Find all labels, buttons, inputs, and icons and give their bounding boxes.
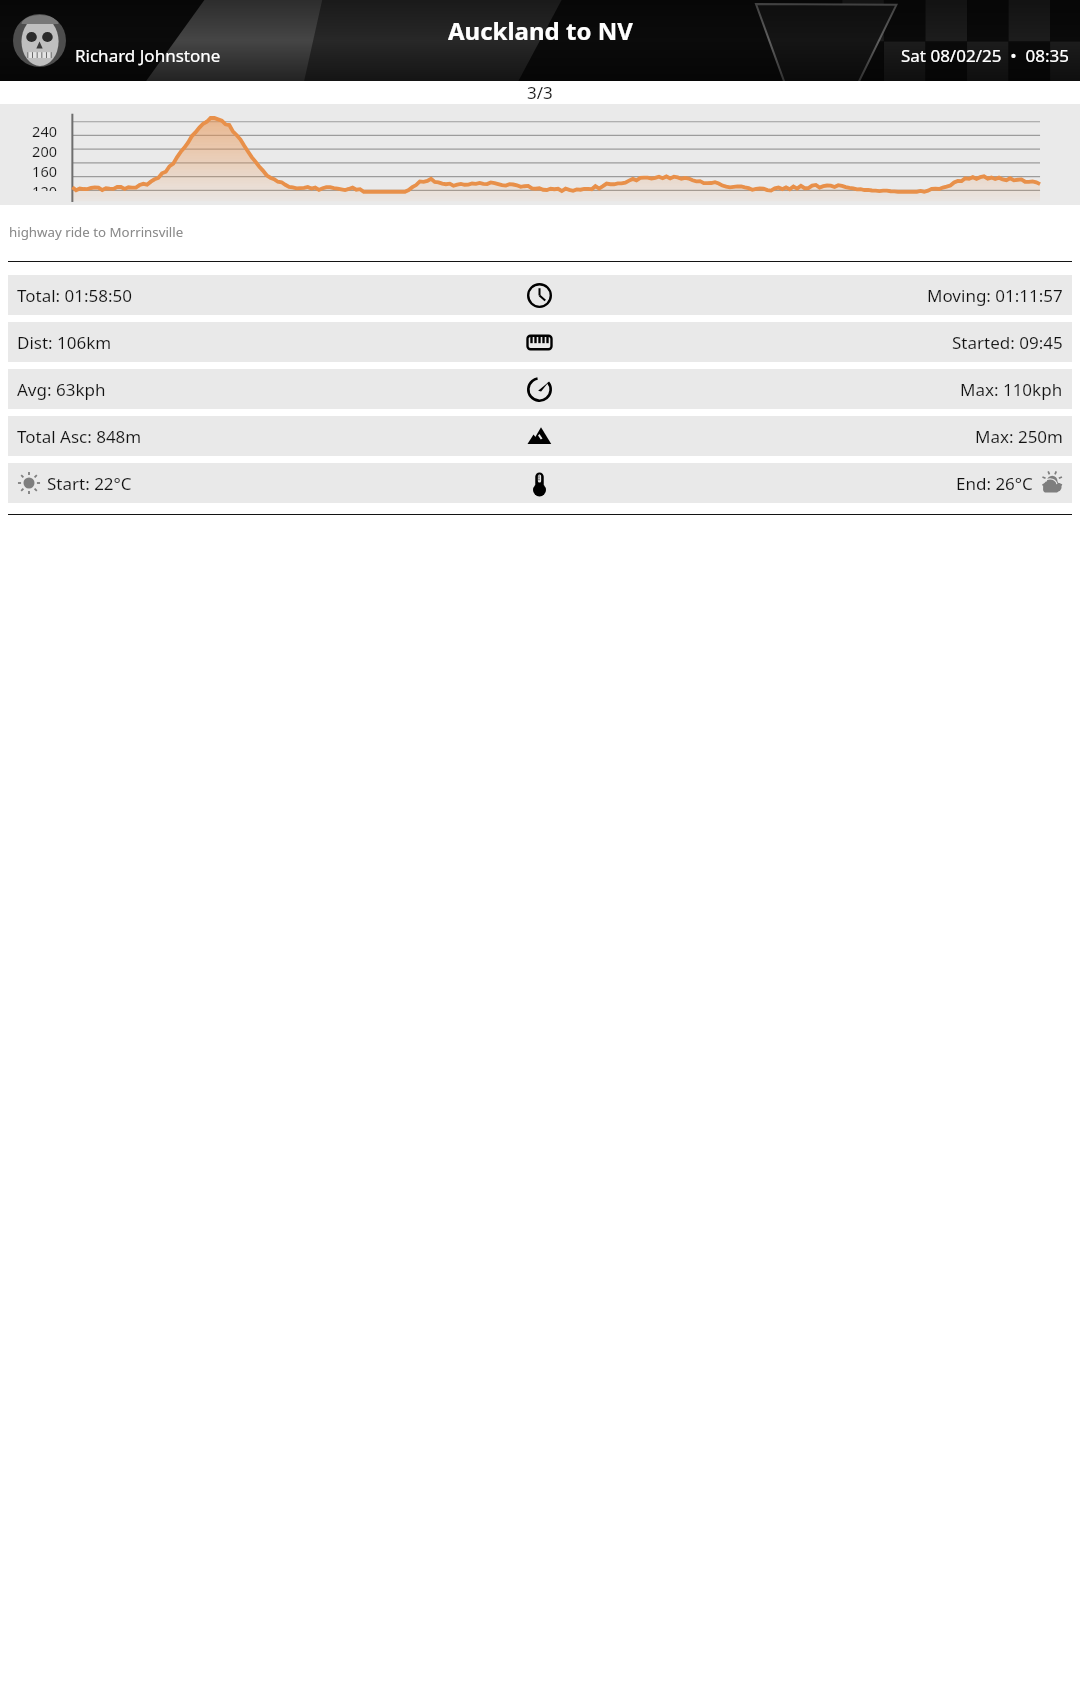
other: Partly cloudy xyxy=(1039,471,1063,495)
staticText: Max: 110kph xyxy=(960,378,1063,401)
staticText: End: 26°C xyxy=(956,472,1033,495)
staticText: Auckland to NV xyxy=(448,14,633,47)
staticText: 3/3 xyxy=(527,81,553,104)
other: Speed xyxy=(527,377,552,402)
other: Duration xyxy=(527,283,552,308)
staticText: Started: 09:45 xyxy=(952,331,1063,354)
other: Elevation xyxy=(527,424,552,449)
other: Temperature xyxy=(527,471,552,496)
staticText: Dist: 106km xyxy=(17,331,112,354)
staticText: Richard Johnstone xyxy=(75,44,221,67)
button[interactable]: Avg: 63kph xyxy=(8,369,1072,409)
staticText: Avg: 63kph xyxy=(17,378,106,401)
button[interactable]: Dist: 106km xyxy=(8,322,1072,362)
staticText: Moving: 01:11:57 xyxy=(927,284,1063,307)
button[interactable]: Total: 01:58:50 xyxy=(8,275,1072,315)
other: Distance xyxy=(527,330,552,355)
staticText: 240 xyxy=(32,121,57,141)
button[interactable]: Rider avatar xyxy=(13,14,66,67)
staticText: Total: 01:58:50 xyxy=(17,284,133,307)
button[interactable]: Sunny xyxy=(8,463,1072,503)
staticText: Start: 22°C xyxy=(47,472,132,495)
other: Sunny xyxy=(17,471,41,495)
staticText: Total Asc: 848m xyxy=(17,425,142,448)
staticText: 200 xyxy=(32,141,57,161)
staticText: Sat 08/02/25 • 08:35 xyxy=(901,44,1069,67)
button[interactable]: Total Asc: 848m xyxy=(8,416,1072,456)
staticText: Max: 250m xyxy=(975,425,1063,448)
staticText: 120 xyxy=(32,181,57,191)
staticText: highway ride to Morrinsville xyxy=(9,223,184,241)
staticText: 160 xyxy=(32,161,57,181)
